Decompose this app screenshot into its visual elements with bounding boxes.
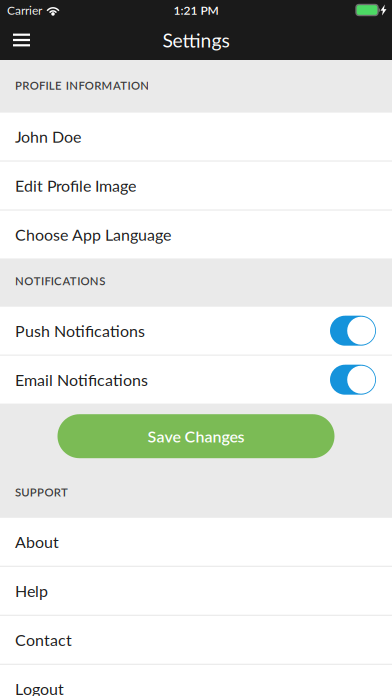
staticText: Carrier xyxy=(7,3,42,17)
staticText: Choose App Language xyxy=(15,225,171,244)
staticText: Logout xyxy=(15,679,64,696)
button[interactable]: Push Notifications xyxy=(330,316,376,346)
staticText: Push Notifications xyxy=(15,321,145,340)
button[interactable]: About xyxy=(0,518,392,567)
staticText: Help xyxy=(15,581,48,600)
staticText: PROFILE INFORMATION xyxy=(15,78,149,92)
button[interactable]: Save Changes xyxy=(57,414,334,458)
staticText: Settings xyxy=(162,28,229,52)
staticText: About xyxy=(15,532,59,551)
staticText: SUPPORT xyxy=(15,485,68,499)
button[interactable]: Edit Profile Image xyxy=(0,162,392,211)
button[interactable]: John Doe xyxy=(0,113,392,162)
button[interactable]: Email Notifications xyxy=(330,365,376,395)
staticText: Save Changes xyxy=(147,427,244,446)
staticText: Edit Profile Image xyxy=(15,176,136,195)
button[interactable]: Help xyxy=(0,567,392,616)
staticText: 1:21 PM xyxy=(173,3,218,17)
staticText: Contact xyxy=(15,630,72,649)
button[interactable]: Logout xyxy=(0,665,392,696)
button[interactable]: Choose App Language xyxy=(0,211,392,260)
button[interactable]: Contact xyxy=(0,616,392,665)
staticText: John Doe xyxy=(15,127,81,146)
staticText: Email Notifications xyxy=(15,370,148,389)
button[interactable]: Menu xyxy=(0,20,43,60)
staticText: NOTIFICATIONS xyxy=(15,274,105,288)
